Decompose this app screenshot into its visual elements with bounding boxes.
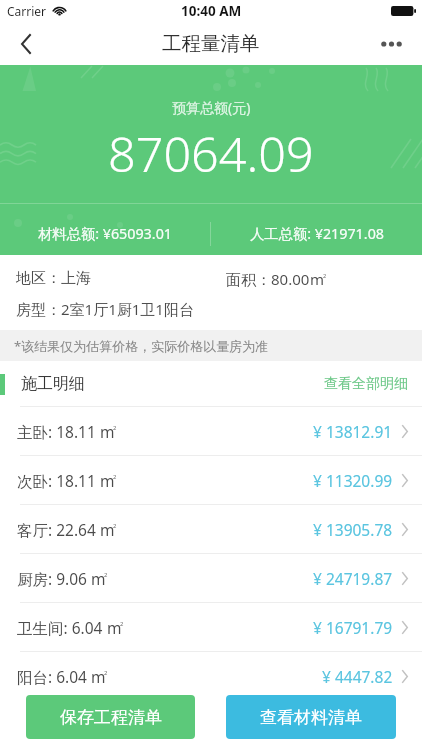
staticText: 面积：80.00 (226, 269, 310, 289)
staticText: 卫生间: 6.04 (17, 617, 107, 638)
button[interactable]: 阳台: 6.04 (0, 652, 422, 700)
staticText: ¥ 4447.82 (322, 666, 393, 687)
staticText: ¥ 16791.79 (313, 617, 393, 638)
staticText: ¥ 13812.91 (313, 421, 393, 442)
staticText: 施工明细 (21, 374, 85, 394)
staticText: 主卧: 18.11 (17, 421, 100, 442)
staticText: 2 (104, 669, 108, 677)
staticText: 房型：2室1厅1厨1卫1阳台 (16, 299, 194, 319)
staticText: 查看材料清单 (260, 707, 362, 728)
staticText: m (107, 617, 122, 638)
staticText: ¥ 11320.99 (313, 470, 393, 491)
staticText: 2 (113, 522, 117, 530)
staticText: 2 (323, 272, 327, 280)
button[interactable]: 客厅: 22.64 (0, 505, 422, 553)
staticText: m (91, 666, 106, 687)
staticText: 2 (113, 473, 117, 481)
staticText: 预算总额(元) (172, 98, 251, 117)
button[interactable]: 次卧: 18.11 (0, 456, 422, 504)
button[interactable]: 厨房: 9.06 (0, 554, 422, 602)
staticText: 2 (113, 424, 117, 432)
staticText: 材料总额: ¥65093.01 (38, 224, 172, 244)
staticText: m (310, 269, 325, 289)
staticText: m (100, 519, 115, 540)
staticText: 地区：上海 (16, 269, 226, 288)
staticText: 2 (104, 571, 108, 579)
staticText: ¥ 24719.87 (313, 568, 393, 589)
staticText: 厨房: 9.06 (17, 568, 91, 589)
staticText: *该结果仅为估算价格，实际价格以量房为准 (14, 337, 269, 355)
button[interactable]: 卫生间: 6.04 (0, 603, 422, 651)
staticText: 查看全部明细 (324, 375, 408, 393)
button[interactable]: 查看材料清单 (226, 695, 396, 739)
button[interactable]: 保存工程清单 (26, 695, 195, 739)
staticText: Carrier (7, 3, 47, 19)
button[interactable]: 查看全部明细 (232, 361, 422, 407)
staticText: m (100, 421, 115, 442)
staticText: 保存工程清单 (60, 707, 162, 728)
staticText: 次卧: 18.11 (17, 470, 100, 491)
staticText: m (91, 568, 106, 589)
staticText: 工程量清单 (162, 31, 260, 56)
staticText: 87064.09 (108, 120, 314, 186)
staticText: 2 (120, 620, 124, 628)
staticText: 阳台: 6.04 (17, 666, 91, 687)
button[interactable]: More options (372, 22, 422, 65)
staticText: ¥ 13905.78 (313, 519, 393, 540)
staticText: m (100, 470, 115, 491)
staticText: 10:40 AM (181, 2, 242, 20)
button[interactable]: 主卧: 18.11 (0, 407, 422, 455)
button[interactable]: Back (0, 22, 50, 65)
staticText: 人工总额: ¥21971.08 (250, 224, 384, 244)
staticText: 客厅: 22.64 (17, 519, 100, 540)
